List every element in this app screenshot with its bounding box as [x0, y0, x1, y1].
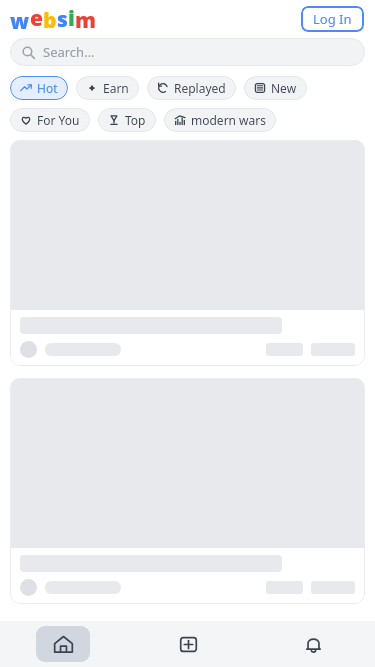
staticText: e — [30, 4, 43, 33]
staticText: w — [10, 7, 30, 36]
staticText: Hot — [37, 80, 58, 96]
staticText: Top — [125, 112, 146, 128]
button[interactable]: Create — [161, 626, 215, 662]
button[interactable]: Notifications — [286, 626, 340, 662]
button[interactable]: modern wars — [164, 108, 276, 132]
staticText: modern wars — [191, 112, 266, 128]
staticText: Earn — [103, 80, 129, 96]
button[interactable]: Search... — [10, 38, 365, 66]
staticText: Log In — [313, 10, 352, 28]
staticText: b — [43, 6, 57, 35]
button[interactable]: Replayed — [147, 76, 236, 100]
button[interactable]: For You — [10, 108, 90, 132]
staticText: For You — [37, 112, 80, 128]
staticText: m — [75, 6, 96, 35]
staticText: Replayed — [174, 80, 226, 96]
button[interactable] — [10, 140, 365, 366]
staticText: Search... — [43, 43, 95, 61]
staticText: s — [57, 5, 68, 34]
button[interactable]: Hot — [10, 76, 68, 100]
button[interactable]: Log In — [301, 6, 364, 32]
button[interactable] — [10, 378, 365, 604]
button[interactable]: Earn — [76, 76, 139, 100]
staticText: New — [271, 80, 297, 96]
staticText: i — [68, 4, 75, 33]
button[interactable]: New — [244, 76, 307, 100]
button[interactable]: Top — [98, 108, 156, 132]
button[interactable]: Home — [36, 626, 90, 662]
